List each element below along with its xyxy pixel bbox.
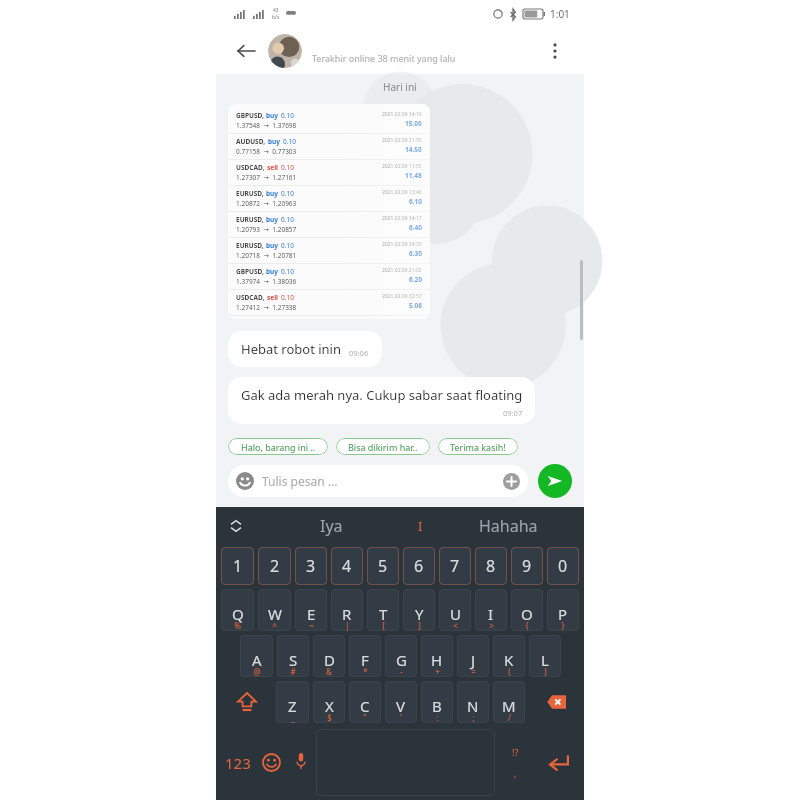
staticText: | — [345, 620, 350, 631]
button[interactable]: Halo, barang ini .. — [228, 438, 328, 455]
button[interactable]: 7 — [439, 547, 471, 585]
button[interactable]: GBPUSD, — [228, 104, 430, 319]
staticText: 1.20872 → 1.20963 — [236, 199, 297, 208]
button[interactable]: ) — [529, 635, 561, 677]
button[interactable]: !? — [495, 729, 535, 796]
staticText: EURUSD, — [236, 189, 264, 198]
staticText: ^ — [272, 620, 277, 631]
button[interactable]: _ — [276, 681, 309, 723]
button[interactable]: 6 — [403, 547, 435, 585]
button[interactable]: 0 — [547, 547, 579, 585]
button[interactable]: Hahaha — [433, 507, 584, 545]
staticText: A — [252, 650, 262, 670]
staticText: 0.10 — [281, 215, 294, 224]
button[interactable]: Iya — [256, 507, 407, 545]
button[interactable]: " — [349, 681, 381, 723]
staticText: Tulis pesan ... — [262, 473, 338, 489]
button[interactable]: Voice input — [286, 729, 316, 796]
button[interactable]: < — [439, 589, 471, 631]
other: Emoji — [236, 472, 254, 490]
button[interactable]: Back — [230, 35, 262, 67]
button[interactable]: } — [547, 589, 579, 631]
staticText: + — [435, 666, 440, 677]
button[interactable]: ~ — [295, 589, 327, 631]
staticText: EURUSD, — [236, 241, 264, 250]
staticText: 0.10 — [281, 293, 294, 302]
button[interactable]: ( — [493, 635, 525, 677]
button[interactable]: Emoji — [228, 465, 528, 497]
staticText: T — [379, 604, 388, 624]
staticText: ) — [544, 666, 547, 677]
staticText: K — [504, 650, 514, 670]
button[interactable]: 4 — [331, 547, 363, 585]
button[interactable]: { — [511, 589, 543, 631]
button[interactable]: & — [313, 635, 345, 677]
button[interactable]: Bisa dikirim har.. — [336, 438, 430, 455]
button[interactable]: 123 — [219, 729, 256, 796]
button[interactable]: 1 — [221, 547, 254, 585]
button[interactable]: I — [407, 507, 433, 545]
staticText: @ — [253, 666, 261, 677]
button[interactable]: 2 — [258, 547, 291, 585]
staticText: O — [521, 604, 533, 624]
button[interactable]: * — [349, 635, 381, 677]
button[interactable]: % — [221, 589, 254, 631]
staticText: Y — [415, 604, 424, 624]
staticText: < — [453, 620, 458, 631]
staticText: 6.20 — [409, 275, 422, 284]
staticText: 2021.02.09 34:17 — [382, 215, 422, 222]
button[interactable]: ] — [403, 589, 435, 631]
staticText: 43 — [273, 7, 279, 14]
button[interactable]: # — [277, 635, 309, 677]
button[interactable]: Gak ada merah nya. Cukup sabar saat floa… — [228, 377, 535, 424]
staticText: 1.20793 → 1.20857 — [236, 225, 297, 234]
staticText: * — [363, 666, 368, 677]
button[interactable]: 3 — [295, 547, 327, 585]
button[interactable]: ^ — [258, 589, 291, 631]
button[interactable]: Hebat robot inin — [228, 331, 382, 367]
button[interactable]: = — [457, 635, 489, 677]
staticText: 11.48 — [405, 171, 422, 180]
staticText: = — [471, 666, 476, 677]
staticText: B — [432, 696, 442, 716]
button[interactable]: $ — [313, 681, 345, 723]
button[interactable]: Send — [538, 464, 572, 498]
button[interactable]: ; — [457, 681, 489, 723]
staticText: sell — [267, 293, 279, 302]
staticText: " — [363, 712, 367, 723]
staticText: 1 — [233, 555, 243, 577]
staticText: S — [289, 650, 298, 670]
button[interactable]: / — [493, 681, 525, 723]
button[interactable]: : — [421, 681, 453, 723]
button[interactable]: 9 — [511, 547, 543, 585]
button[interactable]: @ — [240, 635, 273, 677]
staticText: Hahaha — [479, 515, 538, 537]
staticText: G — [396, 650, 407, 670]
button[interactable]: Space — [316, 729, 495, 796]
staticText: 1.37974 → 1.38036 — [236, 277, 297, 286]
button[interactable]: | — [331, 589, 363, 631]
button[interactable]: ' — [385, 681, 417, 723]
button[interactable]: 8 — [475, 547, 507, 585]
staticText: Iya — [320, 515, 343, 537]
button[interactable]: + — [421, 635, 453, 677]
staticText: buy — [266, 241, 279, 250]
staticText: - — [400, 666, 403, 677]
button[interactable]: More options — [540, 36, 570, 66]
button[interactable]: [ — [367, 589, 399, 631]
button[interactable]: Backspace — [527, 679, 581, 725]
staticText: 123 — [225, 753, 251, 773]
button[interactable]: Terima kasih! — [438, 438, 518, 455]
button[interactable]: Shift — [219, 679, 274, 725]
staticText: 7 — [450, 555, 460, 577]
button[interactable]: 5 — [367, 547, 399, 585]
staticText: 5 — [378, 555, 388, 577]
staticText: 0 — [558, 555, 568, 577]
button[interactable]: Emoji — [256, 729, 286, 796]
button[interactable]: Expand suggestions — [216, 507, 256, 545]
staticText: # — [290, 666, 296, 677]
button[interactable]: Enter — [535, 729, 581, 796]
staticText: buy — [266, 189, 279, 198]
button[interactable]: - — [385, 635, 417, 677]
button[interactable]: > — [475, 589, 507, 631]
